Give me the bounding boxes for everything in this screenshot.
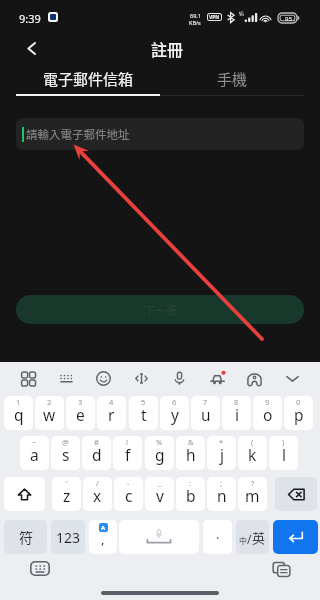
staticText: ? bbox=[251, 478, 255, 488]
staticText: d bbox=[92, 444, 102, 465]
button[interactable]: / bbox=[83, 477, 112, 511]
staticText: A bbox=[101, 524, 106, 532]
staticText: / bbox=[96, 478, 99, 488]
staticText: ( bbox=[251, 437, 254, 447]
staticText: x bbox=[93, 485, 102, 506]
button[interactable]: ~ bbox=[20, 436, 49, 470]
button[interactable]: 8 bbox=[222, 396, 251, 430]
staticText: z bbox=[63, 485, 71, 506]
button[interactable]: Voice input bbox=[164, 362, 194, 394]
staticText: y bbox=[171, 404, 179, 425]
button[interactable]: Keyboard layout bbox=[51, 362, 81, 394]
button[interactable]: 手機 bbox=[160, 63, 304, 95]
button[interactable]: 1 bbox=[4, 396, 33, 430]
button[interactable]: Recent apps bbox=[270, 557, 293, 580]
button[interactable]: ! bbox=[113, 436, 142, 470]
button[interactable]: Text editing bbox=[126, 362, 156, 394]
staticText: 3 bbox=[78, 397, 83, 407]
button[interactable]: 5 bbox=[129, 396, 158, 430]
button[interactable]: * bbox=[207, 436, 236, 470]
button[interactable]: ? bbox=[238, 477, 267, 511]
staticText: ) bbox=[282, 437, 285, 447]
button[interactable]: Stickers bbox=[202, 362, 232, 394]
button[interactable]: 0 bbox=[284, 396, 313, 430]
staticText: ~ bbox=[32, 437, 37, 447]
staticText: ' bbox=[66, 478, 68, 488]
staticText: t bbox=[141, 404, 147, 425]
staticText: # bbox=[94, 437, 99, 447]
staticText: l bbox=[282, 444, 286, 465]
button[interactable]: . bbox=[203, 520, 232, 554]
staticText: w bbox=[43, 404, 56, 425]
button[interactable]: 7 bbox=[191, 396, 220, 430]
staticText: v bbox=[156, 485, 164, 506]
staticText: 9 bbox=[265, 397, 270, 407]
staticText: k bbox=[248, 444, 257, 465]
button[interactable]: 下一張 bbox=[16, 295, 304, 324]
button[interactable]: 9 bbox=[253, 396, 282, 430]
staticText: f bbox=[125, 444, 131, 465]
button[interactable]: % bbox=[145, 436, 174, 470]
staticText: 手機 bbox=[217, 68, 248, 90]
staticText: : bbox=[189, 478, 192, 488]
staticText: @ bbox=[62, 437, 69, 447]
button[interactable]: 4 bbox=[97, 396, 126, 430]
staticText: 95 bbox=[285, 15, 292, 23]
staticText: j bbox=[220, 444, 224, 465]
button[interactable]: ; bbox=[207, 477, 236, 511]
button[interactable]: - bbox=[114, 477, 143, 511]
button[interactable]: 3 bbox=[66, 396, 95, 430]
staticText: 5 bbox=[141, 397, 146, 407]
button[interactable]: 2 bbox=[35, 396, 64, 430]
button[interactable]: Profile bbox=[239, 362, 269, 394]
button[interactable]: Emoji bbox=[88, 362, 118, 394]
button[interactable]: 請輸入電子郵件地址 bbox=[16, 118, 304, 150]
button[interactable]: ) bbox=[269, 436, 298, 470]
staticText: ; bbox=[220, 478, 223, 488]
staticText: ! bbox=[126, 437, 129, 447]
button[interactable]: 123 bbox=[51, 520, 85, 554]
button[interactable]: 6 bbox=[160, 396, 189, 430]
button[interactable]: _ bbox=[145, 477, 174, 511]
staticText: KB/s bbox=[189, 19, 201, 26]
button[interactable]: & bbox=[176, 436, 205, 470]
staticText: 1 bbox=[16, 397, 21, 407]
staticText: . bbox=[216, 525, 220, 543]
button[interactable]: Space bbox=[119, 520, 199, 554]
button[interactable]: Hide keyboard bbox=[277, 362, 307, 394]
staticText: 英 bbox=[252, 528, 266, 547]
button[interactable]: Enter bbox=[273, 520, 318, 554]
staticText: h bbox=[186, 444, 196, 465]
button[interactable]: ' bbox=[52, 477, 81, 511]
button[interactable]: # bbox=[82, 436, 111, 470]
button[interactable]: Back bbox=[14, 31, 48, 65]
staticText: n bbox=[217, 485, 227, 506]
button[interactable]: Shift bbox=[4, 477, 45, 511]
staticText: s bbox=[62, 444, 70, 465]
staticText: 中 bbox=[239, 535, 247, 547]
staticText: g bbox=[155, 444, 165, 465]
button[interactable]: 符 bbox=[4, 520, 47, 554]
staticText: _ bbox=[158, 478, 162, 488]
button[interactable]: Keyboard bbox=[28, 557, 51, 580]
staticText: 電子郵件信箱 bbox=[43, 68, 134, 90]
staticText: VPN bbox=[209, 14, 220, 20]
button[interactable]: : bbox=[176, 477, 205, 511]
staticText: 4 bbox=[109, 397, 114, 407]
staticText: q bbox=[14, 404, 24, 425]
button[interactable]: 電子郵件信箱 bbox=[16, 63, 160, 95]
button[interactable]: @ bbox=[51, 436, 80, 470]
button[interactable]: Apps bbox=[13, 362, 43, 394]
staticText: 69.1 bbox=[190, 12, 201, 19]
button[interactable]: A bbox=[89, 520, 117, 554]
staticText: m bbox=[245, 485, 260, 506]
staticText: 9:39 bbox=[19, 11, 41, 26]
staticText: a bbox=[30, 444, 39, 465]
button[interactable]: Backspace bbox=[275, 477, 317, 511]
staticText: 符 bbox=[19, 527, 33, 547]
button[interactable]: 中 bbox=[236, 520, 269, 554]
staticText: 7 bbox=[203, 397, 208, 407]
staticText: 註冊 bbox=[151, 37, 184, 60]
staticText: - bbox=[127, 478, 130, 488]
button[interactable]: ( bbox=[238, 436, 267, 470]
